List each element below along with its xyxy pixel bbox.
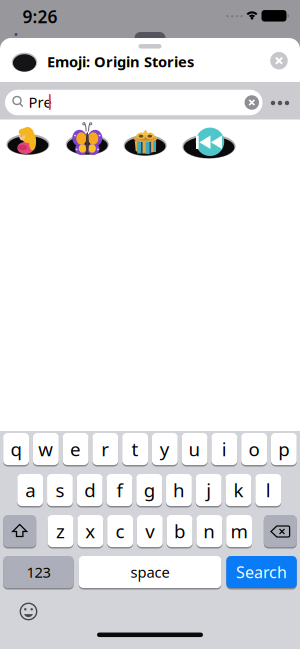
button[interactable]: m bbox=[226, 515, 252, 548]
staticText: o bbox=[249, 437, 260, 461]
staticText: k bbox=[233, 478, 243, 502]
button[interactable]: s bbox=[47, 474, 73, 507]
staticText: b bbox=[174, 519, 185, 543]
staticText: w bbox=[38, 437, 53, 461]
button[interactable]: j bbox=[196, 474, 222, 507]
staticText: f bbox=[116, 478, 122, 502]
button[interactable]: More bbox=[270, 97, 290, 109]
staticText: Pre bbox=[28, 92, 51, 112]
button[interactable]: c bbox=[107, 515, 133, 548]
button[interactable]: b bbox=[167, 515, 192, 548]
button[interactable]: Shift bbox=[3, 515, 36, 548]
staticText: p bbox=[278, 437, 289, 461]
button[interactable]: v bbox=[137, 515, 163, 548]
button[interactable]: Close bbox=[270, 52, 288, 69]
staticText: Emoji: Origin Stories bbox=[47, 52, 194, 71]
staticText: v bbox=[145, 519, 154, 543]
staticText: a bbox=[25, 478, 35, 502]
staticText: z bbox=[56, 519, 65, 543]
staticText: u bbox=[189, 437, 201, 461]
button[interactable]: Emoji keyboard bbox=[19, 602, 38, 621]
button[interactable]: Gift episode bbox=[123, 117, 167, 161]
button[interactable]: h bbox=[166, 474, 192, 507]
button[interactable]: Delete bbox=[264, 515, 297, 548]
button[interactable]: Search field bbox=[5, 90, 262, 115]
button[interactable]: n bbox=[196, 515, 222, 548]
button[interactable]: p bbox=[271, 433, 297, 466]
button[interactable]: e bbox=[63, 433, 88, 466]
button[interactable]: g bbox=[136, 474, 162, 507]
button[interactable]: Search bbox=[226, 556, 297, 589]
staticText: l bbox=[266, 478, 271, 502]
button[interactable]: Woman episode bbox=[6, 117, 50, 161]
button[interactable]: q bbox=[3, 433, 29, 466]
button[interactable]: r bbox=[92, 433, 118, 466]
button[interactable]: Previous track episode bbox=[182, 118, 236, 164]
staticText: h bbox=[173, 478, 185, 502]
button[interactable]: a bbox=[17, 474, 43, 507]
button[interactable]: t bbox=[122, 433, 148, 466]
staticText: m bbox=[231, 519, 248, 543]
button[interactable]: 123 bbox=[3, 556, 74, 589]
staticText: r bbox=[101, 437, 109, 461]
staticText: Search bbox=[236, 561, 287, 583]
button[interactable]: y bbox=[152, 433, 178, 466]
button[interactable]: i bbox=[211, 433, 237, 466]
staticText: y bbox=[160, 437, 170, 461]
button[interactable]: l bbox=[255, 474, 281, 507]
button[interactable]: u bbox=[182, 433, 207, 466]
button[interactable]: f bbox=[106, 474, 132, 507]
staticText: e bbox=[70, 437, 81, 461]
staticText: c bbox=[116, 519, 125, 543]
button[interactable]: Clear text bbox=[245, 95, 259, 110]
staticText: q bbox=[11, 437, 22, 461]
staticText: 9:26 bbox=[22, 5, 57, 28]
button[interactable]: z bbox=[48, 515, 73, 548]
staticText: n bbox=[203, 519, 215, 543]
staticText: t bbox=[132, 437, 139, 461]
button[interactable]: o bbox=[241, 433, 267, 466]
button[interactable]: k bbox=[226, 474, 251, 507]
staticText: d bbox=[84, 478, 95, 502]
button[interactable]: w bbox=[33, 433, 59, 466]
button[interactable]: d bbox=[77, 474, 103, 507]
staticText: space bbox=[131, 562, 170, 582]
staticText: 123 bbox=[26, 562, 50, 582]
button[interactable]: x bbox=[77, 515, 103, 548]
button[interactable]: space bbox=[79, 556, 221, 589]
staticText: s bbox=[55, 478, 64, 502]
staticText: x bbox=[85, 519, 95, 543]
staticText: j bbox=[206, 478, 211, 502]
staticText: i bbox=[222, 437, 227, 461]
staticText: g bbox=[144, 478, 155, 502]
button[interactable]: Butterfly episode bbox=[65, 117, 109, 161]
